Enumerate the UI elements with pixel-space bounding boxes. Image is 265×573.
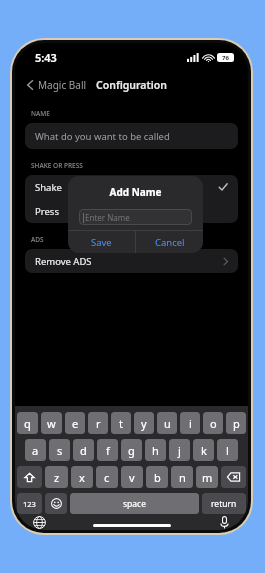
staticText: Cancel [155, 236, 185, 249]
button[interactable]: return [202, 493, 246, 514]
staticText: t [119, 416, 123, 431]
button[interactable]: q [17, 412, 38, 434]
staticText: p [233, 416, 240, 431]
staticText: 123 [23, 499, 36, 509]
button[interactable]: s [49, 439, 70, 461]
button[interactable]: g [121, 439, 142, 461]
staticText: 5:43 [35, 50, 57, 65]
button[interactable]: Shift [17, 466, 42, 488]
staticText: e [72, 416, 79, 431]
staticText: s [57, 443, 63, 458]
staticText: 76 [222, 54, 229, 62]
button[interactable]: i [180, 412, 200, 434]
button[interactable]: space [70, 493, 199, 514]
staticText: Press [35, 205, 59, 218]
staticText: NAME [31, 109, 50, 118]
button[interactable]: Dictation [216, 514, 232, 530]
staticText: Enter Name [85, 212, 130, 223]
button[interactable]: b [146, 466, 168, 488]
staticText: r [96, 416, 101, 431]
button[interactable]: r [88, 412, 108, 434]
staticText: m [202, 470, 213, 485]
staticText: c [104, 470, 110, 485]
staticText: Configuration [96, 78, 167, 92]
staticText: h [152, 443, 159, 458]
button[interactable]: Magic Ball [15, 74, 95, 96]
staticText: l [226, 443, 229, 458]
button[interactable]: p [226, 412, 246, 434]
button[interactable]: 123 [17, 493, 42, 514]
staticText: What do you want to be called [35, 130, 170, 143]
staticText: a [32, 443, 39, 458]
button[interactable]: n [171, 466, 193, 488]
button[interactable]: o [203, 412, 223, 434]
staticText: x [79, 470, 85, 485]
button[interactable]: m [196, 466, 218, 488]
button[interactable]: Save [68, 231, 135, 253]
button[interactable]: u [157, 412, 177, 434]
button[interactable]: j [169, 439, 190, 461]
staticText: j [178, 443, 181, 458]
button[interactable]: Change keyboard [31, 514, 47, 530]
staticText: w [47, 416, 56, 431]
button[interactable]: v [121, 466, 143, 488]
staticText: Shake [35, 181, 62, 194]
staticText: Remove ADS [35, 255, 92, 268]
button[interactable]: e [65, 412, 85, 434]
button[interactable]: t [111, 412, 131, 434]
staticText: u [164, 416, 171, 431]
button[interactable]: Press [25, 199, 238, 223]
button[interactable]: Cancel [136, 231, 203, 253]
button[interactable]: f [97, 439, 118, 461]
button[interactable]: Emoji [45, 493, 67, 514]
staticText: g [128, 443, 135, 458]
staticText: space [123, 498, 146, 510]
staticText: z [54, 470, 60, 485]
button[interactable]: k [193, 439, 214, 461]
staticText: Save [91, 236, 112, 249]
staticText: y [141, 416, 147, 431]
button[interactable]: a [25, 439, 46, 461]
staticText: Magic Ball [38, 78, 87, 92]
button[interactable]: Remove ADS [25, 249, 238, 273]
button[interactable]: x [71, 466, 93, 488]
button[interactable]: Enter Name [79, 209, 192, 225]
staticText: return [211, 498, 237, 510]
button[interactable]: d [73, 439, 94, 461]
staticText: q [24, 416, 31, 431]
staticText: o [210, 416, 217, 431]
button[interactable]: y [134, 412, 154, 434]
staticText: i [189, 416, 192, 431]
button[interactable]: c [96, 466, 118, 488]
button[interactable]: l [217, 439, 238, 461]
staticText: n [179, 470, 186, 485]
staticText: ADS [31, 235, 44, 244]
button[interactable]: w [41, 412, 62, 434]
staticText: SHAKE OR PRESS [31, 161, 83, 170]
staticText: v [129, 470, 135, 485]
staticText: d [80, 443, 87, 458]
staticText: k [201, 443, 207, 458]
button[interactable]: What do you want to be called [25, 123, 238, 149]
staticText: b [154, 470, 161, 485]
button[interactable]: h [145, 439, 166, 461]
staticText: f [106, 443, 110, 458]
button[interactable]: z [45, 466, 68, 488]
button[interactable]: Shake [25, 175, 238, 199]
button[interactable]: Backspace [221, 466, 246, 488]
staticText: Add Name [68, 185, 203, 199]
